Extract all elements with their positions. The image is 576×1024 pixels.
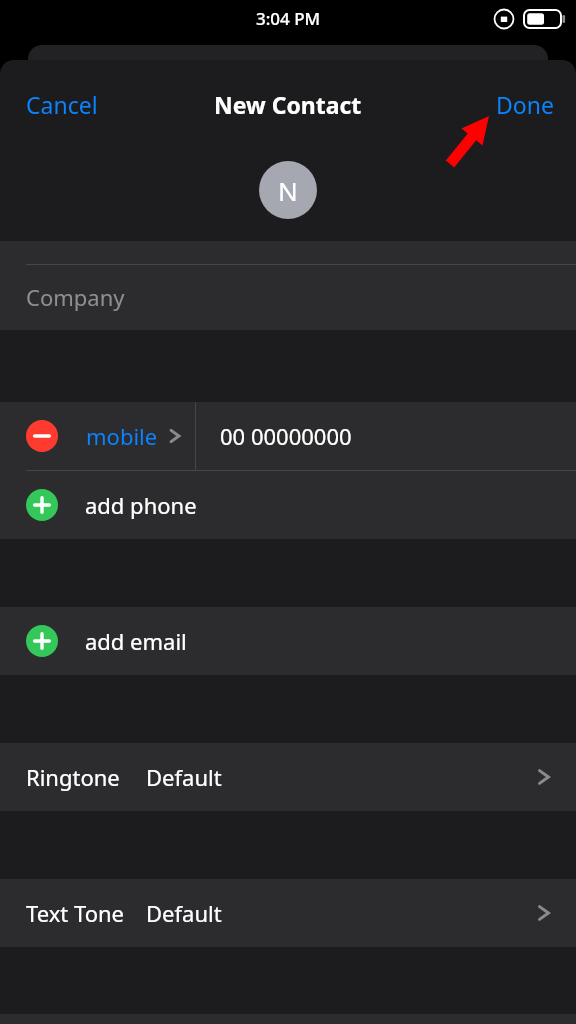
button[interactable]: mobile: [0, 402, 576, 470]
staticText: Default: [146, 762, 222, 792]
button[interactable]: Ringtone: [0, 743, 576, 811]
staticText: Text Tone: [26, 898, 124, 928]
staticText: 3:04 PM: [256, 7, 321, 30]
staticText: mobile: [86, 421, 158, 451]
button[interactable]: Cancel: [0, 60, 116, 132]
staticText: Ringtone: [26, 762, 120, 792]
button[interactable]: add email: [0, 607, 576, 675]
staticText: 00 00000000: [220, 421, 352, 451]
staticText: Cancel: [26, 89, 98, 120]
staticText: N: [278, 173, 298, 208]
staticText: Company: [26, 282, 125, 312]
button[interactable]: Add photo: [259, 161, 317, 219]
staticText: Done: [496, 89, 554, 120]
button[interactable]: Company: [0, 241, 576, 330]
button[interactable]: Text Tone: [0, 879, 576, 947]
staticText: Default: [146, 898, 222, 928]
staticText: add email: [85, 626, 187, 656]
button[interactable]: Done: [478, 60, 576, 132]
staticText: New Contact: [214, 89, 362, 120]
staticText: add phone: [85, 490, 197, 520]
button[interactable]: add phone: [0, 471, 576, 539]
